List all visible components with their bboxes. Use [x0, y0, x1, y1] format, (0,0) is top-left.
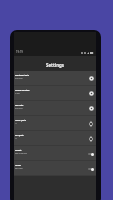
staticText: Settings [46, 62, 64, 68]
staticText: 1/1 [15, 137, 18, 139]
staticText: 03/31/2022 [15, 107, 23, 109]
staticText: Enlistment Date [15, 74, 29, 76]
button[interactable]: Service Duration [14, 86, 96, 101]
other: Pick date [89, 76, 94, 81]
button[interactable]: ORD Date [14, 101, 96, 116]
staticText: 19:19 [16, 50, 23, 54]
staticText: Date on free time [15, 152, 27, 154]
other: Adjust value [88, 136, 94, 142]
staticText: Priority [15, 149, 22, 151]
other: Pick date [89, 106, 94, 111]
staticText: ORD Date [15, 104, 24, 106]
button[interactable]: Leave Quota [14, 116, 96, 131]
staticText: Service Duration [15, 89, 30, 91]
staticText: Theme [15, 164, 21, 166]
other: Toggle [88, 167, 94, 171]
button[interactable]: Off Quota [14, 131, 96, 146]
button[interactable]: Priority [14, 146, 96, 161]
staticText: Leave Quota [15, 119, 26, 121]
staticText: 14 [15, 122, 17, 124]
button[interactable]: Theme [14, 161, 96, 176]
staticText: 04/01/2020 [15, 77, 23, 79]
staticText: Dark Mode [15, 167, 23, 169]
button[interactable]: Enlistment Date [14, 71, 96, 86]
other: Pick date [89, 91, 94, 96]
staticText: 2 Years [15, 92, 20, 94]
other: Toggle [88, 152, 94, 156]
other: Adjust value [88, 121, 94, 127]
staticText: Off Quota [15, 134, 24, 136]
